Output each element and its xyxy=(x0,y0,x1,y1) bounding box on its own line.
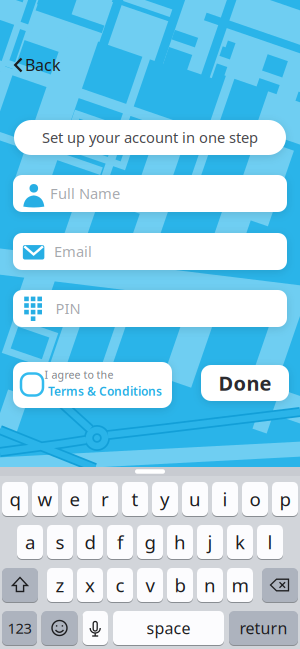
staticText: g xyxy=(144,530,155,554)
button[interactable]: h xyxy=(167,524,193,559)
staticText: Done xyxy=(218,370,271,396)
staticText: b xyxy=(174,573,185,597)
button[interactable]: e xyxy=(62,481,88,516)
staticText: I agree to the xyxy=(44,367,113,382)
staticText: z xyxy=(55,573,64,597)
button[interactable]: Email xyxy=(13,233,287,270)
staticText: Email xyxy=(54,242,92,261)
staticText: j xyxy=(207,530,212,554)
button[interactable]: f xyxy=(107,524,133,559)
staticText: x xyxy=(85,573,95,597)
staticText: space xyxy=(146,617,190,639)
staticText: i xyxy=(222,487,227,511)
button[interactable]: space xyxy=(113,610,224,645)
staticText: p xyxy=(279,487,290,511)
button[interactable]: n xyxy=(197,567,223,602)
button[interactable]: I agree to the Terms & Conditions xyxy=(13,362,172,408)
staticText: r xyxy=(101,487,109,511)
staticText: a xyxy=(25,530,35,554)
button[interactable]: d xyxy=(77,524,103,559)
button[interactable]: i xyxy=(212,481,238,516)
button[interactable]: v xyxy=(137,567,163,602)
button[interactable]: o xyxy=(242,481,268,516)
button[interactable]: c xyxy=(107,567,133,602)
button[interactable]: Dictate xyxy=(82,610,108,645)
button[interactable]: g xyxy=(137,524,163,559)
staticText: 123 xyxy=(7,618,31,638)
button[interactable]: j xyxy=(197,524,223,559)
button[interactable]: b xyxy=(167,567,193,602)
button[interactable]: Delete xyxy=(262,567,298,602)
staticText: s xyxy=(55,530,64,554)
staticText: PIN xyxy=(55,299,80,318)
button[interactable]: p xyxy=(272,481,298,516)
button[interactable]: q xyxy=(2,481,28,516)
button[interactable]: w xyxy=(32,481,58,516)
button[interactable]: y xyxy=(152,481,178,516)
button[interactable]: 123 xyxy=(2,610,37,645)
staticText: e xyxy=(69,487,80,511)
button[interactable]: k xyxy=(227,524,253,559)
staticText: Set up your account in one step xyxy=(42,128,258,147)
staticText: v xyxy=(145,573,154,597)
button[interactable]: PIN xyxy=(13,290,287,327)
staticText: u xyxy=(189,487,201,511)
staticText: Terms & Conditions xyxy=(48,383,162,399)
button[interactable]: Back xyxy=(10,53,66,77)
button[interactable]: s xyxy=(47,524,73,559)
staticText: l xyxy=(267,530,272,554)
button[interactable]: l xyxy=(257,524,283,559)
staticText: Full Name xyxy=(50,184,120,203)
staticText: k xyxy=(235,530,245,554)
button[interactable]: Shift xyxy=(2,567,38,602)
button[interactable]: Full Name xyxy=(13,175,287,212)
button[interactable]: Done xyxy=(201,365,289,401)
button[interactable]: u xyxy=(182,481,208,516)
button[interactable]: x xyxy=(77,567,103,602)
staticText: y xyxy=(160,487,170,511)
staticText: c xyxy=(115,573,124,597)
button[interactable]: Emoji xyxy=(41,610,77,645)
button[interactable]: r xyxy=(92,481,118,516)
button[interactable]: return xyxy=(229,610,298,645)
staticText: h xyxy=(174,530,186,554)
button[interactable]: m xyxy=(227,567,253,602)
button[interactable]: t xyxy=(122,481,148,516)
staticText: m xyxy=(231,573,248,597)
staticText: w xyxy=(37,487,52,511)
staticText: o xyxy=(249,487,260,511)
staticText: return xyxy=(239,617,287,639)
staticText: n xyxy=(204,573,216,597)
staticText: q xyxy=(9,487,20,511)
button[interactable]: a xyxy=(17,524,43,559)
staticText: d xyxy=(84,530,95,554)
staticText: Back xyxy=(25,54,61,75)
staticText: t xyxy=(131,487,138,511)
staticText: f xyxy=(117,530,123,554)
button[interactable]: z xyxy=(47,567,73,602)
